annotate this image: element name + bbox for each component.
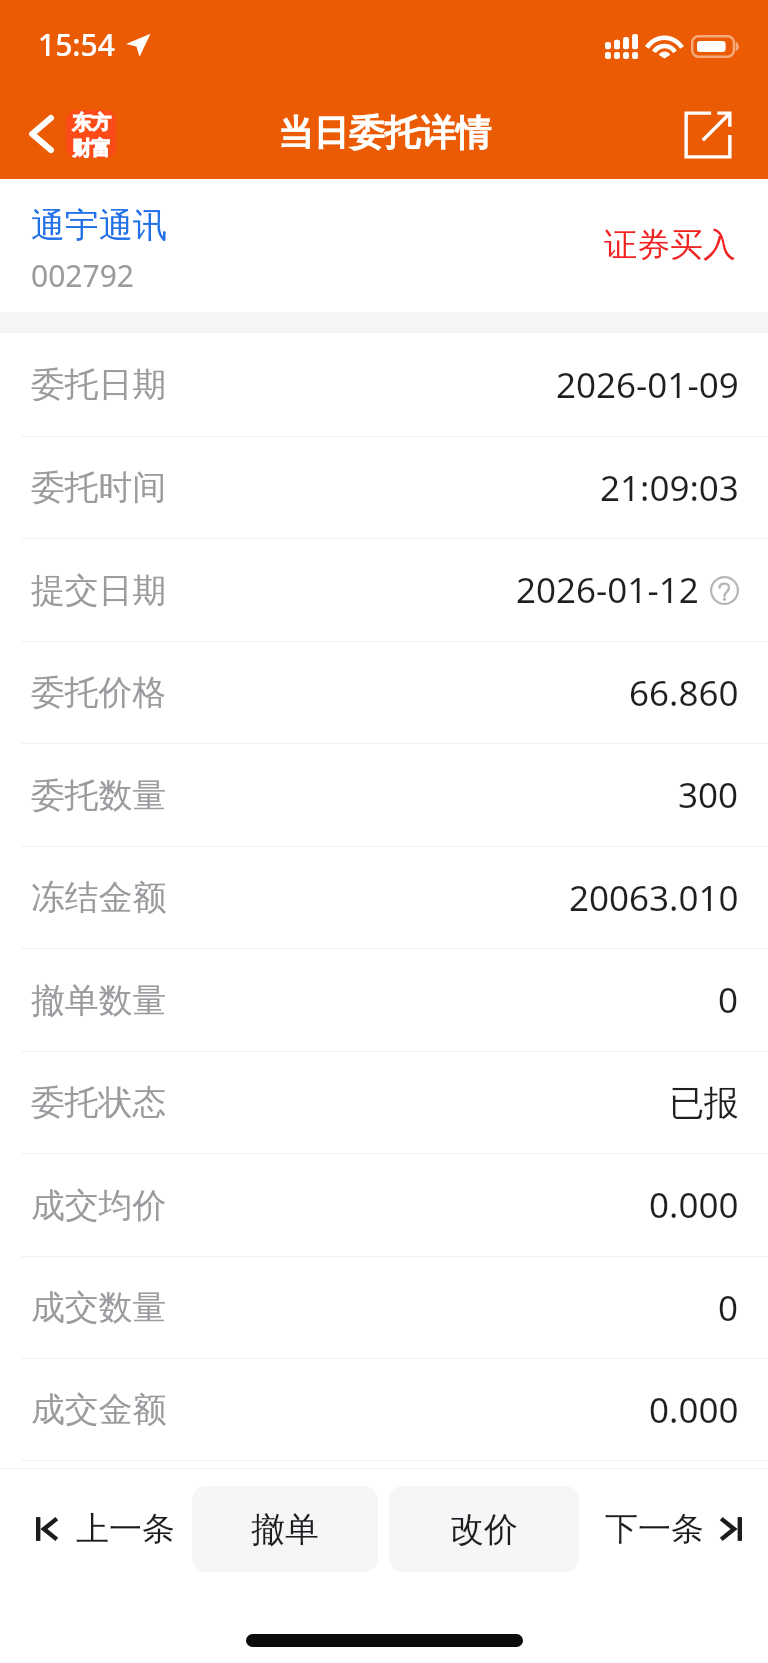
staticText: 委托价格 bbox=[31, 671, 167, 714]
staticText: 成交数量 bbox=[31, 1286, 167, 1329]
button[interactable]: 委托日期 bbox=[0, 333, 768, 436]
staticText: 0.000 bbox=[649, 1386, 739, 1434]
staticText: 当日委托详情 bbox=[278, 111, 491, 156]
staticText: 300 bbox=[678, 771, 739, 819]
staticText: 委托数量 bbox=[31, 774, 167, 817]
staticText: 委托日期 bbox=[31, 363, 167, 406]
staticText: 冻结金额 bbox=[31, 876, 167, 919]
staticText: 下一条 bbox=[605, 1508, 704, 1550]
staticText: 66.860 bbox=[629, 669, 739, 717]
staticText: 002792 bbox=[31, 255, 134, 296]
button[interactable]: 委托时间 bbox=[0, 437, 768, 538]
staticText: 20063.010 bbox=[569, 874, 739, 922]
button[interactable]: 撤单 bbox=[192, 1486, 378, 1572]
staticText: 15:54 bbox=[38, 24, 115, 65]
button[interactable]: 提交日期 bbox=[0, 539, 768, 641]
staticText: 2026-01-12 bbox=[516, 566, 699, 614]
staticText: 0 bbox=[718, 1284, 739, 1332]
button[interactable]: 上一条 bbox=[0, 1486, 192, 1572]
staticText: 撤单 bbox=[251, 1508, 319, 1551]
button[interactable]: 成交金额 bbox=[0, 1359, 768, 1460]
staticText: 东方 bbox=[72, 110, 111, 135]
staticText: 财富 bbox=[72, 136, 111, 158]
staticText: 委托状态 bbox=[31, 1081, 167, 1124]
staticText: 0.000 bbox=[649, 1181, 739, 1229]
button[interactable]: 委托价格 bbox=[0, 642, 768, 743]
staticText: 改价 bbox=[450, 1508, 518, 1551]
button[interactable]: 改价 bbox=[389, 1486, 579, 1572]
staticText: 已报 bbox=[669, 1081, 739, 1125]
staticText: 撤单数量 bbox=[31, 979, 167, 1022]
button[interactable]: 下一条 bbox=[579, 1486, 768, 1572]
button[interactable]: 委托状态 bbox=[0, 1052, 768, 1153]
staticText: 证券买入 bbox=[604, 224, 736, 266]
staticText: 上一条 bbox=[76, 1508, 175, 1550]
staticText: 21:09:03 bbox=[600, 464, 739, 512]
button[interactable]: 冻结金额 bbox=[0, 847, 768, 948]
staticText: 2026-01-09 bbox=[556, 361, 739, 409]
button[interactable]: 成交均价 bbox=[0, 1154, 768, 1256]
staticText: 提交日期 bbox=[31, 569, 167, 612]
button[interactable]: 撤单数量 bbox=[0, 949, 768, 1051]
staticText: 成交金额 bbox=[31, 1388, 167, 1431]
button[interactable]: Share bbox=[648, 88, 768, 179]
staticText: 0 bbox=[718, 976, 739, 1024]
button[interactable]: 委托数量 bbox=[0, 744, 768, 846]
staticText: 委托时间 bbox=[31, 466, 167, 509]
staticText: 成交均价 bbox=[31, 1184, 167, 1227]
staticText: 通宇通讯 bbox=[31, 204, 167, 247]
button[interactable]: Back bbox=[0, 88, 134, 179]
button[interactable]: 成交数量 bbox=[0, 1257, 768, 1358]
